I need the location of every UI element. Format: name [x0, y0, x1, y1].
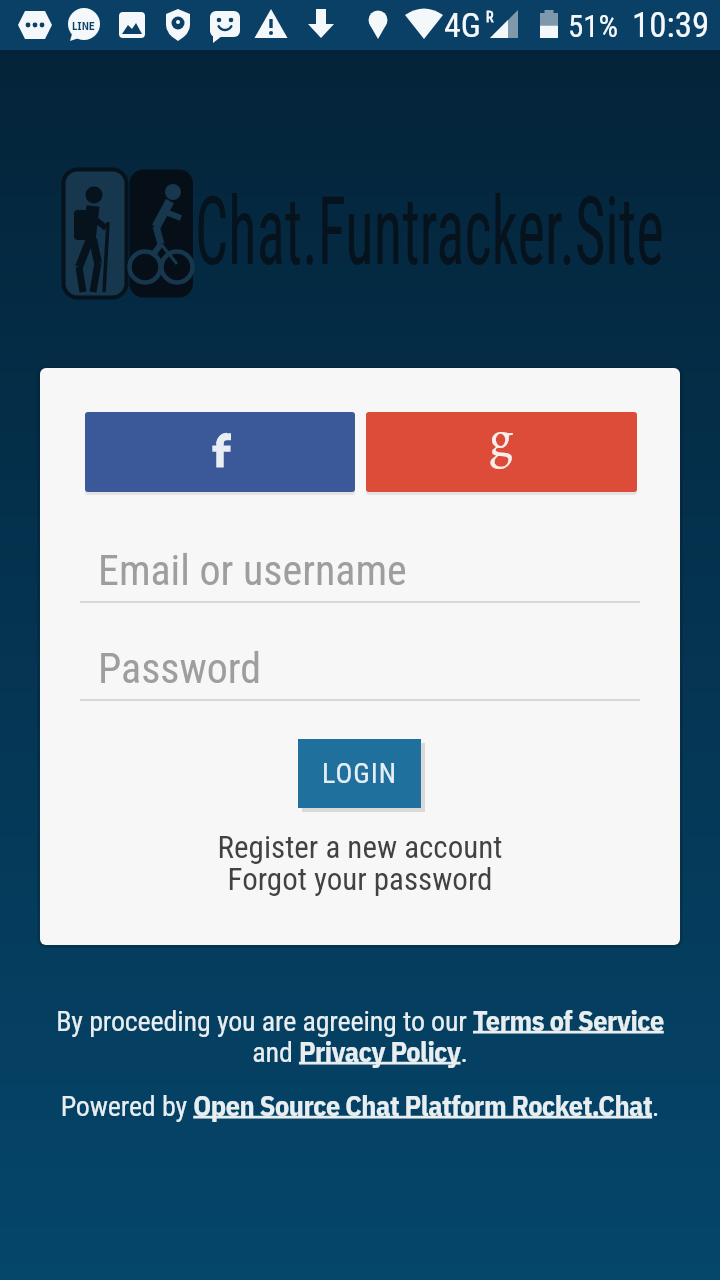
button[interactable]: By proceeding you are agreeing to our Te…: [0, 1002, 720, 1038]
staticText: 10:39: [632, 5, 710, 46]
staticText: Email or username: [98, 546, 407, 595]
staticText: Password: [98, 644, 262, 693]
staticText: 51%: [568, 8, 619, 44]
button[interactable]: Forgot your password: [40, 861, 680, 897]
button[interactable]: and Privacy Policy.: [0, 1033, 720, 1069]
staticText: LINE: [72, 19, 95, 33]
button[interactable]: [85, 412, 355, 492]
staticText: Chat.Funtracker.Site: [195, 177, 682, 287]
button[interactable]: Register a new account: [40, 829, 680, 865]
button[interactable]: LOGIN: [298, 739, 421, 808]
button[interactable]: [80, 636, 640, 702]
staticText: R: [486, 9, 494, 25]
button[interactable]: Powered by Open Source Chat Platform Roc…: [0, 1087, 720, 1123]
staticText: LOGIN: [322, 757, 398, 790]
staticText: g: [490, 412, 513, 470]
button[interactable]: [80, 538, 640, 604]
staticText: 4G: [444, 5, 481, 45]
button[interactable]: g: [366, 412, 637, 492]
